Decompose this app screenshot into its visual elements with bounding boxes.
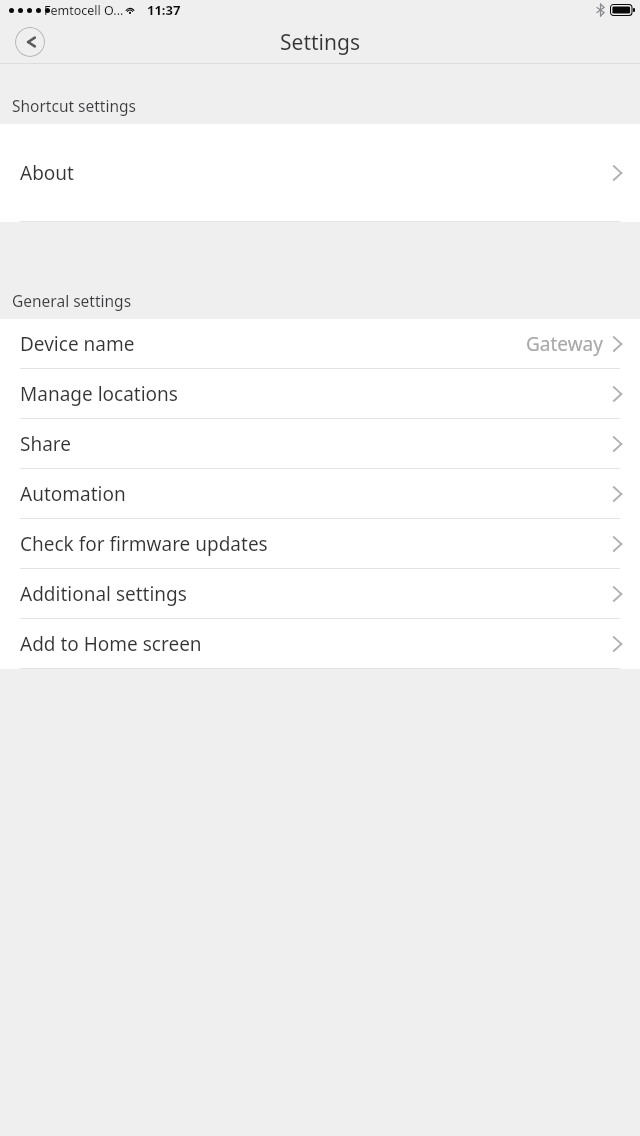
- button[interactable]: Manage locations: [0, 369, 640, 419]
- button[interactable]: Automation: [0, 469, 640, 519]
- staticText: Add to Home screen: [20, 631, 202, 657]
- staticText: Settings: [280, 28, 360, 57]
- staticText: Device name: [20, 331, 135, 357]
- staticText: Automation: [20, 481, 126, 507]
- staticText: Gateway: [526, 331, 603, 357]
- button[interactable]: Device name: [0, 319, 640, 369]
- staticText: About: [20, 160, 74, 186]
- staticText: Check for firmware updates: [20, 531, 268, 557]
- staticText: 11:37: [147, 1, 181, 19]
- staticText: General settings: [12, 290, 132, 311]
- button[interactable]: Share: [0, 419, 640, 469]
- staticText: Femtocell O...: [44, 2, 124, 19]
- button[interactable]: Add to Home screen: [0, 619, 640, 669]
- staticText: Manage locations: [20, 381, 178, 407]
- button[interactable]: About: [0, 124, 640, 222]
- button[interactable]: Additional settings: [0, 569, 640, 619]
- staticText: Additional settings: [20, 581, 187, 607]
- staticText: Share: [20, 431, 72, 457]
- button[interactable]: Check for firmware updates: [0, 519, 640, 569]
- staticText: Shortcut settings: [12, 95, 137, 116]
- button[interactable]: Back: [15, 27, 45, 57]
